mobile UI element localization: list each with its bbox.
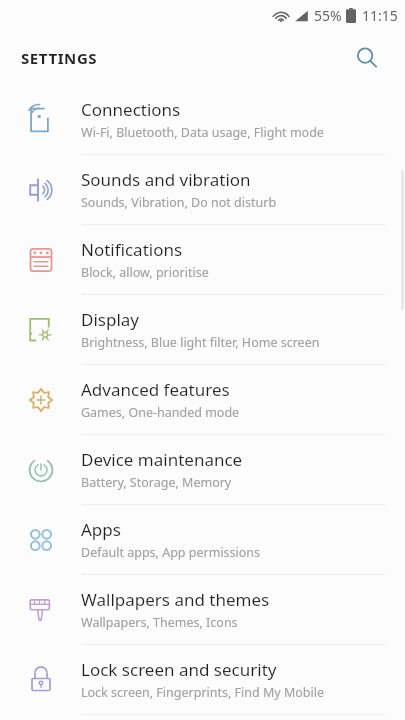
button[interactable]: Wallpapers and themes	[0, 575, 405, 644]
staticText: Wallpapers, Themes, Icons	[81, 614, 238, 631]
button[interactable]: Lock screen and security	[0, 645, 405, 714]
button[interactable]: Device maintenance	[0, 435, 405, 504]
staticText: Wallpapers and themes	[81, 588, 270, 611]
staticText: Display	[81, 308, 139, 331]
staticText: SETTINGS	[21, 48, 98, 68]
button[interactable]: Notifications	[0, 225, 405, 294]
button[interactable]: Sounds and vibration	[0, 155, 405, 224]
button[interactable]: Advanced features	[0, 365, 405, 434]
staticText: 55%	[314, 6, 342, 25]
staticText: Battery, Storage, Memory	[81, 474, 232, 491]
staticText: Lock screen, Fingerprints, Find My Mobil…	[81, 684, 325, 701]
staticText: Games, One-handed mode	[81, 404, 240, 421]
button[interactable]: Display	[0, 295, 405, 364]
button[interactable]: Connections	[0, 85, 405, 154]
staticText: Connections	[81, 98, 181, 121]
staticText: Apps	[81, 518, 121, 541]
staticText: Block, allow, prioritise	[81, 264, 209, 281]
button[interactable]: Search	[345, 36, 389, 80]
staticText: Brightness, Blue light filter, Home scre…	[81, 334, 320, 351]
staticText: Lock screen and security	[81, 658, 277, 681]
staticText: Sounds, Vibration, Do not disturb	[81, 194, 277, 211]
button[interactable]: Apps	[0, 505, 405, 574]
staticText: Sounds and vibration	[81, 168, 251, 191]
staticText: 11:15	[362, 6, 398, 25]
staticText: Advanced features	[81, 378, 230, 401]
staticText: Default apps, App permissions	[81, 544, 261, 561]
staticText: Device maintenance	[81, 448, 243, 471]
staticText: Notifications	[81, 238, 183, 261]
staticText: Wi-Fi, Bluetooth, Data usage, Flight mod…	[81, 124, 324, 141]
